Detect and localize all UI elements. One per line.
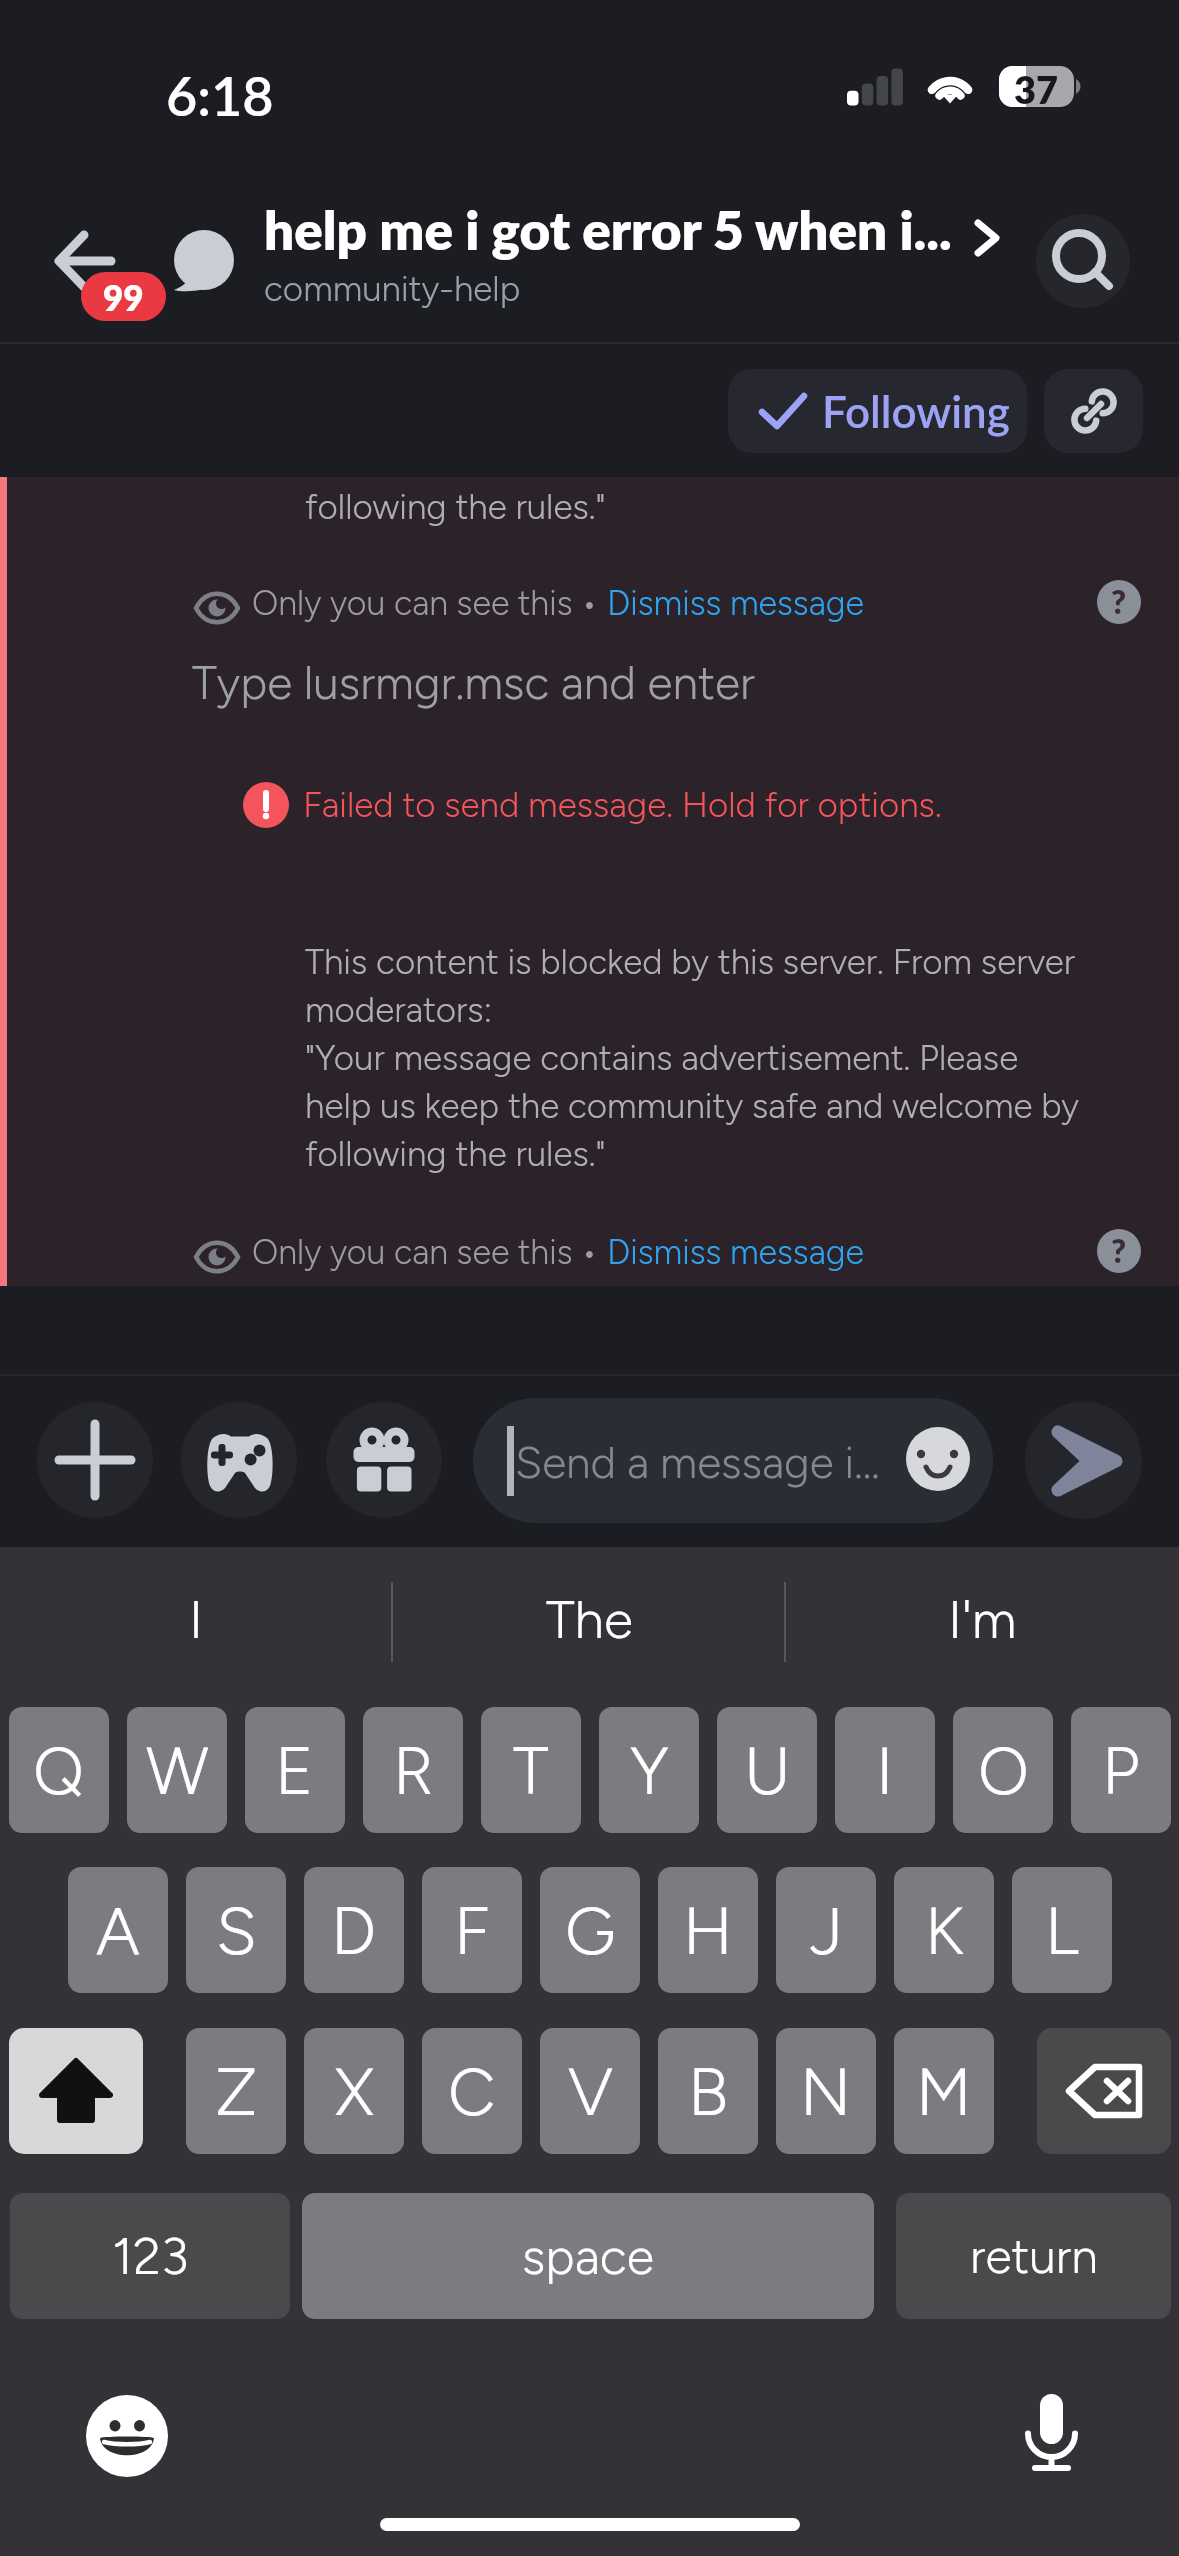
button[interactable]: X (304, 2028, 404, 2154)
staticText: A (96, 1891, 140, 1970)
staticText: Only you can see this • (252, 583, 607, 624)
staticText: space (522, 2226, 654, 2286)
staticText: V (568, 2052, 613, 2131)
button[interactable]: C (422, 2028, 522, 2154)
staticText: J (810, 1891, 843, 1970)
staticText: return (970, 2227, 1098, 2285)
button[interactable]: Dismiss message (607, 1232, 864, 1273)
button[interactable]: S (186, 1867, 286, 1993)
button[interactable]: H (658, 1867, 758, 1993)
button[interactable]: Emoji (86, 2395, 168, 2477)
staticText: H (683, 1891, 733, 1970)
button[interactable]: Z (186, 2028, 286, 2154)
staticText: O (978, 1731, 1029, 1810)
button[interactable]: Send (1025, 1402, 1142, 1519)
staticText: U (744, 1731, 791, 1810)
button[interactable]: T (481, 1707, 581, 1833)
button[interactable]: Dictation (1008, 2388, 1094, 2474)
staticText: Q (33, 1731, 85, 1810)
staticText: N (800, 2052, 852, 2131)
button[interactable]: A (68, 1867, 168, 1993)
button[interactable]: W (127, 1707, 227, 1833)
staticText: Send a message i... (515, 1436, 880, 1489)
staticText: 37 (1014, 66, 1059, 107)
staticText: The (546, 1588, 633, 1652)
button[interactable]: K (894, 1867, 994, 1993)
staticText: G (565, 1891, 616, 1970)
button[interactable]: G (540, 1867, 640, 1993)
button[interactable]: D (304, 1867, 404, 1993)
button[interactable]: space (302, 2193, 874, 2319)
staticText: Y (630, 1731, 669, 1810)
button[interactable]: Shift (9, 2028, 143, 2154)
staticText: Z (215, 2052, 258, 2131)
staticText: Only you can see this • (252, 1232, 607, 1273)
staticText: community-help (264, 268, 521, 310)
staticText: 6:18 (166, 63, 274, 128)
button[interactable]: Add attachment (37, 1402, 153, 1518)
staticText: X (335, 2052, 374, 2131)
staticText: F (454, 1891, 490, 1970)
staticText: I (189, 1588, 203, 1652)
staticText: help me i got error 5 when i... (264, 198, 952, 262)
staticText: I'm (948, 1588, 1017, 1652)
button[interactable]: O (953, 1707, 1053, 1833)
staticText: following the rules." (305, 486, 606, 528)
button[interactable]: return (896, 2193, 1171, 2319)
button[interactable]: P (1071, 1707, 1171, 1833)
staticText: 99 (103, 276, 144, 318)
staticText: B (688, 2052, 729, 2131)
staticText: L (1045, 1891, 1079, 1970)
button[interactable]: Send a message i... (473, 1398, 993, 1523)
staticText: ? (1111, 582, 1127, 620)
button[interactable]: Backspace (1037, 2028, 1171, 2154)
staticText: This content is blocked by this server. … (305, 941, 1080, 1175)
button[interactable]: Help (1097, 1229, 1141, 1273)
button[interactable]: 123 (10, 2193, 290, 2319)
staticText: S (216, 1891, 257, 1970)
button[interactable]: Gift (326, 1402, 442, 1518)
button[interactable]: F (422, 1867, 522, 1993)
button[interactable]: E (245, 1707, 345, 1833)
button[interactable]: V (540, 2028, 640, 2154)
staticText: M (916, 2052, 972, 2131)
staticText: E (275, 1731, 315, 1810)
button[interactable]: The (459, 1570, 719, 1670)
button[interactable]: M (894, 2028, 994, 2154)
staticText: Type lusrmgr.msc and enter (192, 655, 755, 710)
button[interactable]: Help (1097, 580, 1141, 624)
button[interactable]: Q (9, 1707, 109, 1833)
button[interactable]: Following (728, 369, 1027, 453)
button[interactable]: R (363, 1707, 463, 1833)
button[interactable]: Copy link (1044, 369, 1143, 453)
button[interactable]: J (776, 1867, 876, 1993)
button[interactable]: U (717, 1707, 817, 1833)
staticText: P (1102, 1731, 1140, 1810)
button[interactable]: I'm (852, 1570, 1112, 1670)
button[interactable]: I (835, 1707, 935, 1833)
staticText: T (513, 1731, 549, 1810)
staticText: I (876, 1731, 894, 1810)
staticText: Following (822, 385, 1010, 438)
staticText: D (331, 1891, 377, 1970)
button[interactable]: Games (181, 1402, 297, 1518)
button[interactable]: L (1012, 1867, 1112, 1993)
staticText: ? (1111, 1231, 1127, 1269)
staticText: C (448, 2052, 496, 2131)
button[interactable]: Search (1036, 214, 1130, 308)
staticText: Failed to send message. Hold for options… (303, 784, 942, 826)
button[interactable]: Back (40, 205, 180, 330)
staticText: R (393, 1731, 434, 1810)
button[interactable]: Dismiss message (607, 583, 864, 624)
staticText: W (146, 1731, 209, 1810)
staticText: 123 (112, 2226, 189, 2287)
button[interactable]: B (658, 2028, 758, 2154)
button[interactable]: I (66, 1570, 326, 1670)
staticText: K (925, 1891, 964, 1970)
button[interactable]: Y (599, 1707, 699, 1833)
button[interactable]: N (776, 2028, 876, 2154)
